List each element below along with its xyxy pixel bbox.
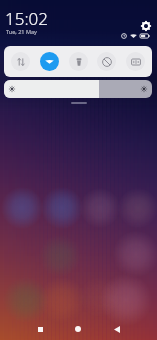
button[interactable]: Do not disturb	[97, 52, 116, 71]
button[interactable]: Mobile data	[11, 52, 30, 71]
button[interactable]: Back	[107, 319, 127, 339]
staticText: 15:02	[5, 7, 48, 30]
button[interactable]: Wi-Fi	[40, 52, 59, 71]
button[interactable]: Recents	[30, 319, 50, 339]
button[interactable]: Home	[68, 319, 88, 339]
button[interactable]: Screen recorder	[126, 52, 145, 71]
button[interactable]: Brightness	[4, 80, 152, 98]
button[interactable]: Settings	[141, 21, 151, 31]
staticText: Tue, 21 May	[6, 28, 37, 35]
button[interactable]: Flashlight	[69, 52, 88, 71]
